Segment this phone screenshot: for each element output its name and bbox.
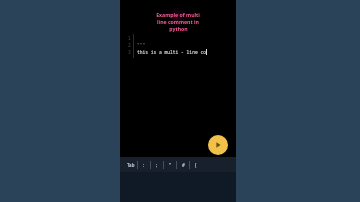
button[interactable]: Run: [208, 135, 228, 155]
staticText: ": [169, 162, 171, 168]
staticText: #: [182, 162, 185, 168]
button[interactable]: #: [177, 157, 189, 172]
button[interactable]: ;: [151, 157, 163, 172]
staticText: python: [169, 25, 188, 32]
button[interactable]: :: [138, 157, 150, 172]
staticText: 3: [128, 49, 131, 55]
staticText: Example of multi: [156, 11, 200, 18]
staticText: this is a multi - line co: [137, 49, 206, 55]
staticText: 1: [128, 35, 131, 41]
staticText: """: [137, 42, 146, 48]
button[interactable]: (: [190, 157, 202, 172]
staticText: 2: [128, 42, 131, 48]
button[interactable]: ": [164, 157, 176, 172]
staticText: ;: [156, 162, 158, 168]
button[interactable]: Tab: [124, 157, 137, 172]
staticText: :: [143, 162, 145, 168]
staticText: (: [195, 162, 197, 168]
staticText: Tab: [127, 162, 135, 168]
staticText: line comment in: [157, 18, 199, 25]
